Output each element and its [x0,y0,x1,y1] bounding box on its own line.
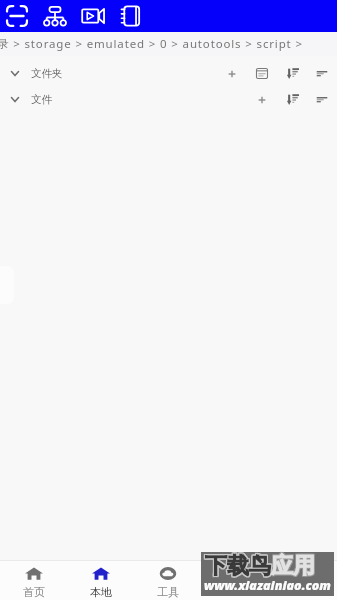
staticText: 录 > storage > emulated > 0 > autotools >… [0,36,303,52]
button[interactable]: 首页 [10,563,58,600]
button[interactable]: Sort [280,62,306,84]
staticText: 下载鸟 [204,553,270,581]
staticText: 下载鸟 [206,552,272,580]
staticText: 文件夹 [31,67,63,80]
staticText: 应用 [271,553,315,581]
button[interactable]: Add [249,88,275,110]
staticText: 应用 [272,551,316,579]
staticText: 应用 [272,553,316,581]
staticText: 下载鸟 [206,551,272,579]
staticText: 应用 [270,552,314,580]
button[interactable]: 本地 [77,563,125,600]
button[interactable]: Network [39,0,71,32]
button[interactable]: 录 > storage > emulated > 0 > autotools >… [0,32,337,56]
button[interactable]: Notes [115,0,147,32]
staticText: 下载鸟 [204,552,270,580]
button[interactable]: View options [309,62,335,84]
button[interactable]: 文件夹 [0,56,337,82]
staticText: 工具 [157,585,179,599]
staticText: 下载鸟 [204,551,270,579]
staticText: 本地 [90,585,112,599]
button[interactable]: Add [219,62,245,84]
staticText: 下载鸟 [205,552,271,580]
staticText: 下载鸟 [205,551,271,579]
button[interactable]: Scan [1,0,33,32]
button[interactable]: View options [309,88,335,110]
button[interactable]: Sort [280,88,306,110]
staticText: 下载鸟 [205,553,271,581]
staticText: 下载鸟 [206,553,272,581]
staticText: 首页 [23,585,45,599]
button[interactable]: 工具 [144,563,192,600]
button[interactable]: 文件 [0,82,337,108]
staticText: 应用 [271,552,315,580]
staticText: 应用 [272,552,316,580]
staticText: 应用 [270,553,314,581]
staticText: 应用 [270,551,314,579]
staticText: www.xiazainiao.com [204,577,331,594]
staticText: 文件 [31,93,52,106]
button[interactable]: Terminal [249,62,275,84]
staticText: 应用 [271,551,315,579]
button[interactable]: Record video [77,0,109,32]
